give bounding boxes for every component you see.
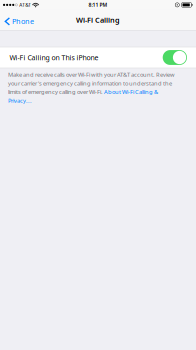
staticText: AT&T bbox=[19, 2, 31, 8]
staticText: 8:11 PM bbox=[88, 1, 107, 8]
staticText: Wi-Fi Calling bbox=[76, 15, 120, 25]
button[interactable]: Wi-Fi Calling on This iPhone bbox=[0, 47, 196, 68]
staticText: Phone bbox=[12, 16, 34, 26]
staticText: Wi-Fi Calling on This iPhone bbox=[9, 53, 98, 62]
staticText: Make and receive calls over Wi-Fi with y… bbox=[8, 71, 175, 104]
button[interactable]: Phone bbox=[0, 10, 39, 31]
button[interactable]: Make and receive calls over Wi-Fi with y… bbox=[0, 68, 179, 104]
